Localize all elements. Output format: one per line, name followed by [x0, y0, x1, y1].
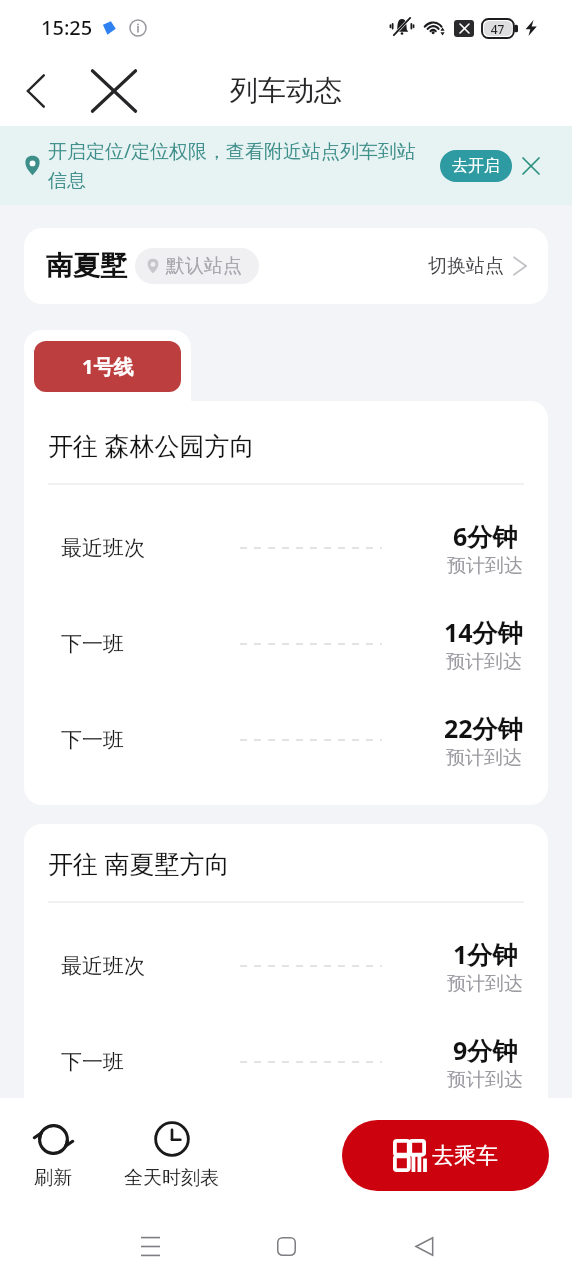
button[interactable]: 1号线: [34, 341, 181, 392]
staticText: 14分钟: [444, 615, 523, 649]
staticText: 最近班次: [61, 535, 145, 561]
staticText: 15:25: [41, 14, 93, 41]
button[interactable]: 返回: [396, 1218, 452, 1274]
staticText: 下一班: [61, 631, 124, 657]
staticText: 去乘车: [432, 1142, 498, 1170]
staticText: 开启定位/定位权限，查看附近站点列车到站: [48, 138, 417, 164]
staticText: 下一班: [61, 727, 124, 753]
staticText: 下一班: [61, 1049, 124, 1075]
button[interactable]: 最近任务: [122, 1218, 178, 1274]
staticText: 预计到达: [446, 746, 522, 770]
staticText: 刷新: [34, 1166, 72, 1190]
staticText: 预计到达: [447, 972, 523, 996]
staticText: 6分钟: [453, 519, 518, 553]
staticText: 默认站点: [166, 254, 242, 278]
staticText: 列车动态: [230, 73, 342, 108]
button[interactable]: 全天时刻表: [114, 1120, 229, 1190]
staticText: 预计到达: [446, 650, 522, 674]
staticText: 1分钟: [453, 937, 518, 971]
staticText: 切换站点: [428, 254, 504, 278]
staticText: 预计到达: [447, 554, 523, 578]
button[interactable]: 刷新: [24, 1121, 82, 1190]
staticText: 最近班次: [61, 953, 145, 979]
button[interactable]: 南夏墅: [24, 228, 548, 304]
staticText: 47: [482, 21, 513, 37]
staticText: 全天时刻表: [124, 1166, 219, 1190]
staticText: 去开启: [452, 156, 500, 176]
staticText: 预计到达: [447, 1068, 523, 1092]
staticText: 开往 南夏墅方向: [48, 846, 230, 880]
button[interactable]: 去开启: [440, 150, 512, 182]
button[interactable]: 关闭提示: [512, 147, 550, 185]
button[interactable]: 关闭: [80, 57, 148, 125]
staticText: 9分钟: [453, 1033, 518, 1067]
button[interactable]: 返回: [9, 63, 65, 119]
staticText: 南夏墅: [46, 249, 127, 283]
button[interactable]: 去乘车: [342, 1120, 549, 1191]
staticText: 开往 森林公园方向: [48, 428, 255, 462]
button[interactable]: 主屏幕: [258, 1218, 314, 1274]
staticText: 1号线: [82, 353, 134, 380]
staticText: 信息: [48, 169, 86, 193]
staticText: 22分钟: [444, 711, 523, 745]
